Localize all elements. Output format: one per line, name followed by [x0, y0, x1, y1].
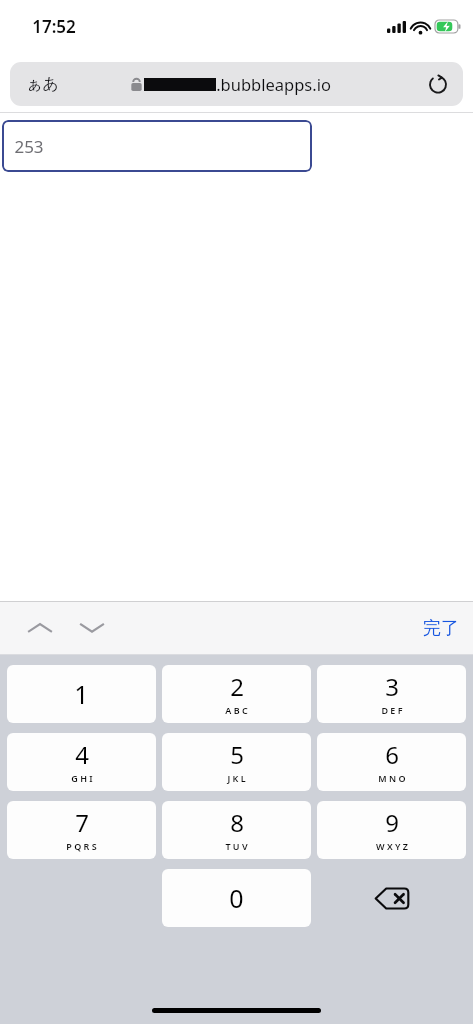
- button[interactable]: Next field: [70, 608, 114, 648]
- button[interactable]: Reload page: [421, 67, 455, 101]
- button[interactable]: ぁあ: [10, 62, 463, 106]
- staticText: 完了: [423, 617, 459, 640]
- staticText: 8: [230, 806, 244, 839]
- staticText: 253: [14, 135, 44, 158]
- staticText: .bubbleapps.io: [216, 73, 331, 95]
- button[interactable]: 7: [7, 801, 156, 859]
- button[interactable]: 3: [317, 665, 466, 723]
- button[interactable]: 1: [7, 665, 156, 723]
- staticText: 17:52: [32, 15, 76, 38]
- button[interactable]: 0: [162, 869, 311, 927]
- staticText: 3: [385, 670, 399, 703]
- staticText: 1: [74, 677, 89, 711]
- button[interactable]: 完了: [423, 617, 459, 640]
- staticText: 0: [229, 881, 244, 915]
- staticText: G H I: [71, 772, 93, 784]
- staticText: 4: [75, 738, 89, 771]
- button[interactable]: 253: [2, 120, 312, 172]
- button[interactable]: 5: [162, 733, 311, 791]
- button[interactable]: 8: [162, 801, 311, 859]
- staticText: D E F: [381, 704, 403, 716]
- button[interactable]: Delete: [317, 869, 466, 927]
- staticText: 9: [385, 806, 399, 839]
- staticText: P Q R S: [66, 840, 97, 852]
- button[interactable]: 9: [317, 801, 466, 859]
- button[interactable]: Previous field: [18, 608, 62, 648]
- staticText: M N O: [378, 772, 406, 784]
- staticText: W X Y Z: [376, 840, 408, 852]
- button[interactable]: 6: [317, 733, 466, 791]
- staticText: 6: [385, 738, 399, 771]
- staticText: ぁあ: [26, 74, 59, 94]
- button[interactable]: 2: [162, 665, 311, 723]
- staticText: 5: [230, 738, 244, 771]
- staticText: 2: [230, 670, 244, 703]
- staticText: 7: [75, 806, 89, 839]
- button[interactable]: 4: [7, 733, 156, 791]
- staticText: A B C: [225, 704, 248, 716]
- staticText: T U V: [225, 840, 248, 852]
- staticText: J K L: [227, 772, 246, 784]
